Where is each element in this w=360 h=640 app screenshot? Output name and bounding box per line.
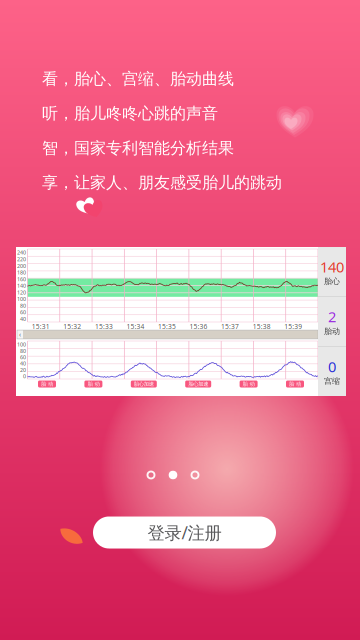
staticText: 15:33 [95,322,113,331]
staticText: 听，胎儿咚咚心跳的声音 [42,104,218,123]
staticText: 胎心加速 [134,381,154,387]
staticText: 15:37 [221,322,239,331]
button[interactable]: 登录/注册 [93,516,276,548]
staticText: 140 [320,257,344,276]
staticText: 60 [20,309,26,315]
staticText: 15:39 [284,322,302,331]
staticText: 胎 动 [41,381,53,387]
staticText: 胎 动 [87,381,99,387]
staticText: 胎心 [324,276,340,286]
staticText: 0 [23,373,26,379]
staticText: 220 [17,256,26,262]
staticText: 80 [20,302,26,309]
staticText: 登录/注册 [147,521,221,544]
staticText: 15:34 [126,322,144,331]
staticText: 15:38 [253,322,271,331]
staticText: 200 [17,262,26,269]
staticText: 看，胎心、宫缩、胎动曲线 [42,69,234,89]
staticText: 120 [17,289,26,295]
staticText: 240 [17,249,26,256]
staticText: 15:31 [32,322,50,331]
staticText: 胎 动 [289,381,301,387]
staticText: 2 [328,307,336,326]
staticText: 20 [20,366,26,373]
staticText: 100 [17,341,26,347]
staticText: 40 [20,315,26,322]
staticText: 80 [20,347,26,354]
staticText: 15:35 [158,322,176,331]
staticText: 享，让家人、朋友感受胎儿的跳动 [42,173,282,193]
staticText: 40 [20,360,26,366]
staticText: 15:32 [63,322,81,331]
staticText: 140 [17,282,26,289]
staticText: 胎 动 [243,381,255,387]
staticText: 15:36 [190,322,208,331]
staticText: 宫缩 [324,376,340,386]
staticText: 60 [20,354,26,360]
staticText: 100 [17,295,26,302]
staticText: 智，国家专利智能分析结果 [42,138,234,158]
staticText: 胎动 [324,326,340,336]
staticText: 160 [17,275,26,282]
staticText: 胎心加速 [188,381,208,387]
staticText: ‹ [19,330,21,339]
staticText: 180 [17,269,26,275]
staticText: 0 [328,357,336,376]
